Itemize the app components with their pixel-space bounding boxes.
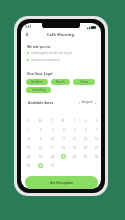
staticText: M: [39, 119, 42, 123]
button[interactable]: 20: [83, 145, 88, 150]
staticText: 23: [39, 155, 42, 159]
staticText: 9:41: [25, 25, 32, 29]
button[interactable]: 15: [26, 145, 31, 150]
button[interactable]: 29: [26, 163, 31, 168]
staticText: 12: [73, 137, 76, 141]
button[interactable]: 30: [38, 163, 43, 168]
staticText: 19: [73, 146, 76, 150]
staticText: 29: [27, 164, 30, 168]
button[interactable]: 12: [72, 136, 77, 141]
staticText: 17: [51, 146, 54, 150]
button[interactable]: 2: [38, 127, 43, 132]
staticText: Café Morning: [47, 32, 74, 37]
staticText: W: [62, 119, 65, 123]
staticText: Brunch: [56, 80, 65, 84]
button[interactable]: 1: [26, 127, 31, 132]
staticText: 5: [74, 128, 76, 132]
staticText: 16: [39, 146, 42, 150]
button[interactable]: 26: [72, 154, 77, 159]
staticText: 21: [95, 146, 98, 150]
staticText: 4: [63, 128, 65, 132]
staticText: 26: [73, 155, 76, 159]
button[interactable]: 27: [83, 154, 88, 159]
staticText: 14: [95, 137, 98, 141]
staticText: 20: [84, 146, 87, 150]
staticText: 6: [85, 128, 87, 132]
staticText: Dinner: [80, 80, 89, 84]
button[interactable]: 21: [94, 145, 99, 150]
staticText: to Instagram stories and tag us: [31, 51, 73, 55]
button[interactable]: 18: [61, 145, 66, 150]
staticText: 7: [96, 128, 98, 132]
staticText: 27: [84, 155, 87, 159]
staticText: Get this option: [50, 181, 73, 185]
button[interactable]: 16: [38, 145, 43, 150]
button[interactable]: 6: [83, 127, 88, 132]
staticText: August: [82, 100, 93, 104]
staticText: 28: [95, 155, 98, 159]
button[interactable]: 23: [38, 154, 43, 159]
staticText: S: [96, 119, 98, 123]
staticText: 10: [51, 137, 54, 141]
staticText: Something: [32, 88, 46, 92]
button[interactable]: 31: [50, 163, 55, 168]
button[interactable]: 3: [50, 127, 55, 132]
staticText: 11: [62, 137, 65, 141]
button[interactable]: 17: [50, 145, 55, 150]
staticText: 3: [52, 128, 54, 132]
staticText: T: [74, 119, 76, 123]
button[interactable]: Something: [26, 87, 51, 93]
button[interactable]: Back: [23, 31, 30, 38]
button[interactable]: 24: [50, 154, 55, 159]
button[interactable]: 28: [94, 154, 99, 159]
button[interactable]: Dinner: [73, 79, 95, 85]
button[interactable]: 25: [61, 154, 66, 159]
staticText: 30: [39, 164, 42, 168]
button[interactable]: Brunch: [51, 79, 70, 85]
staticText: to leave a review here: [31, 58, 60, 62]
button[interactable]: 8: [26, 136, 31, 141]
staticText: S: [27, 119, 29, 123]
button[interactable]: 22: [26, 154, 31, 159]
staticText: One Hour Legal: [27, 71, 53, 75]
button[interactable]: 14: [94, 136, 99, 141]
staticText: 9: [40, 137, 42, 141]
button[interactable]: Get this option: [25, 176, 98, 189]
button[interactable]: 4: [61, 127, 66, 132]
button[interactable]: 10: [50, 136, 55, 141]
button[interactable]: 11: [61, 136, 66, 141]
staticText: 22: [27, 155, 30, 159]
button[interactable]: 13: [83, 136, 88, 141]
staticText: Available dates: [28, 100, 54, 104]
staticText: 13: [84, 137, 87, 141]
staticText: 8: [28, 137, 30, 141]
button[interactable]: 5: [72, 127, 77, 132]
button[interactable]: 7: [94, 127, 99, 132]
staticText: 31: [51, 164, 54, 168]
staticText: Breakfast: [31, 80, 43, 84]
button[interactable]: 19: [72, 145, 77, 150]
staticText: 25: [62, 155, 65, 159]
button[interactable]: Next month: [93, 100, 98, 105]
button[interactable]: Previous month: [77, 100, 82, 105]
staticText: F: [85, 119, 87, 123]
staticText: We ask you to:: [27, 44, 51, 48]
button[interactable]: Breakfast: [26, 79, 48, 85]
staticText: 24: [51, 155, 54, 159]
staticText: 2: [40, 128, 42, 132]
staticText: 15: [27, 146, 30, 150]
staticText: 18: [62, 146, 65, 150]
staticText: 1: [28, 128, 30, 132]
button[interactable]: 9: [38, 136, 43, 141]
staticText: T: [51, 119, 53, 123]
